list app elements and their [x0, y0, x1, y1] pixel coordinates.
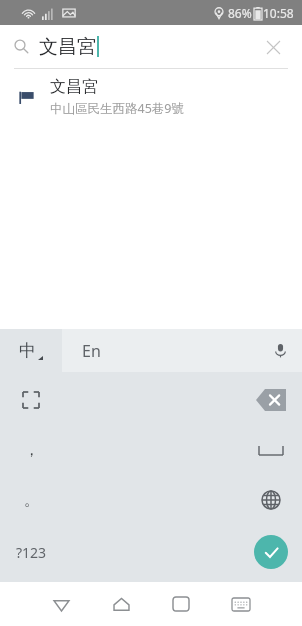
- button[interactable]: Home: [91, 582, 151, 626]
- staticText: 中山區民生西路45巷9號: [50, 100, 184, 117]
- staticText: ?123: [16, 543, 47, 562]
- button[interactable]: Voice input: [258, 329, 302, 372]
- button[interactable]: Enter: [240, 526, 302, 578]
- button[interactable]: Hide keyboard: [211, 582, 271, 626]
- button[interactable]: ，: [0, 427, 62, 474]
- button[interactable]: Change language: [240, 474, 302, 526]
- button[interactable]: Recents: [151, 582, 211, 626]
- staticText: 86%: [228, 5, 252, 21]
- staticText: 中: [19, 340, 36, 361]
- button[interactable]: 中: [0, 329, 62, 372]
- staticText: ，: [24, 441, 39, 460]
- button[interactable]: Clear: [258, 32, 288, 62]
- staticText: 10:58: [263, 5, 294, 21]
- staticText: En: [82, 340, 101, 362]
- button[interactable]: 。: [0, 474, 62, 526]
- other: Search: [14, 39, 29, 54]
- button[interactable]: 文昌宮: [0, 69, 302, 125]
- button[interactable]: Back: [31, 582, 91, 626]
- staticText: 文昌宮: [39, 35, 96, 59]
- button[interactable]: Space: [240, 427, 302, 474]
- button[interactable]: Search: [0, 25, 302, 68]
- staticText: 文昌宮: [50, 77, 98, 97]
- staticText: 。: [24, 491, 39, 510]
- button[interactable]: ?123: [0, 526, 62, 578]
- button[interactable]: Expand keyboard: [0, 372, 62, 427]
- button[interactable]: En: [62, 329, 302, 372]
- button[interactable]: Backspace: [240, 372, 302, 427]
